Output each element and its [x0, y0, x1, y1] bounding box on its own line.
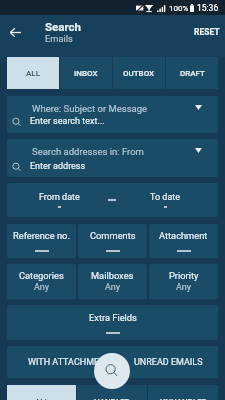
button[interactable]: From date — [7, 183, 112, 217]
staticText: Emails — [45, 33, 73, 44]
staticText: DRAFT — [180, 69, 205, 78]
staticText: Search addresses in: From — [32, 146, 144, 157]
button[interactable]: UNHANDLED — [148, 385, 218, 400]
button[interactable]: DRAFT — [166, 57, 218, 89]
button[interactable]: Comments — [78, 224, 147, 258]
button[interactable]: INBOX — [60, 57, 112, 89]
staticText: Mailboxes — [91, 270, 134, 281]
staticText: ALL — [26, 69, 40, 78]
button[interactable]: RESET — [189, 17, 225, 47]
button[interactable]: WITH ATTACHMENT — [7, 346, 218, 378]
staticText: Any — [34, 282, 50, 293]
button[interactable]: Attachment — [149, 224, 218, 258]
staticText: 100% — [169, 4, 189, 13]
button[interactable]: Where: Subject or Message — [7, 96, 218, 133]
staticText: Reference no. — [13, 230, 70, 241]
staticText: INBOX — [74, 69, 98, 78]
staticText: Attachment — [159, 230, 208, 241]
button[interactable]: Extra Fields — [7, 305, 218, 340]
button[interactable]: Back — [2, 19, 28, 45]
button[interactable]: OUTBOX — [113, 57, 165, 89]
staticText: Any — [176, 282, 192, 293]
staticText: RESET — [194, 27, 220, 37]
staticText: Comments — [90, 230, 136, 241]
staticText: Search — [45, 20, 81, 33]
staticText: To date — [150, 192, 180, 203]
staticText: WITH ATTACHMENT — [28, 357, 111, 368]
staticText: Where: Subject or Message — [32, 103, 148, 114]
staticText: UNREAD EMAILS — [134, 357, 203, 368]
staticText: HANDLED — [94, 397, 131, 400]
staticText: Categories — [19, 270, 64, 281]
other: Expand — [195, 148, 202, 153]
staticText: Any — [105, 282, 121, 293]
other: Expand — [195, 105, 202, 110]
button[interactable]: UNREAD EMAILS — [119, 346, 218, 378]
staticText: Enter search text... — [30, 116, 105, 127]
staticText: ALL — [35, 397, 49, 400]
staticText: OUTBOX — [123, 69, 155, 78]
staticText: Enter address — [30, 161, 86, 172]
staticText: Extra Fields — [89, 312, 137, 323]
button[interactable]: Reference no. — [7, 224, 76, 258]
button[interactable]: ALL — [7, 57, 59, 89]
button[interactable]: Search — [94, 353, 130, 389]
button[interactable]: Categories — [7, 264, 76, 299]
button[interactable]: Priority — [149, 264, 218, 299]
button[interactable]: Search addresses in: From — [7, 139, 218, 177]
button[interactable]: To date — [112, 183, 218, 217]
staticText: From date — [39, 192, 80, 203]
button[interactable]: ALL — [7, 385, 76, 400]
staticText: 15:36 — [197, 3, 219, 13]
button[interactable]: WITH ATTACHMENT — [20, 346, 119, 378]
button[interactable]: HANDLED — [77, 385, 147, 400]
button[interactable]: From date — [7, 183, 218, 217]
button[interactable]: Mailboxes — [78, 264, 147, 299]
staticText: UNHANDLED — [160, 397, 207, 400]
staticText: Priority — [169, 270, 199, 281]
